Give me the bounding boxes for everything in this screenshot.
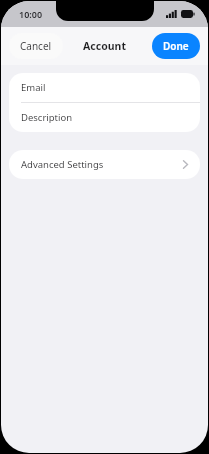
staticText: Description bbox=[21, 111, 73, 124]
button[interactable]: Cancel bbox=[9, 33, 63, 59]
button[interactable]: Email bbox=[9, 73, 200, 102]
other: Open Advanced Settings bbox=[183, 160, 188, 169]
staticText: Account bbox=[83, 39, 126, 53]
staticText: 10:00 bbox=[19, 8, 43, 20]
staticText: Cancel bbox=[20, 39, 52, 53]
button[interactable]: Done bbox=[152, 33, 200, 59]
staticText: Email bbox=[21, 81, 46, 94]
staticText: Advanced Settings bbox=[21, 158, 183, 171]
button[interactable]: Description bbox=[9, 103, 200, 132]
staticText: Done bbox=[163, 39, 189, 53]
button[interactable]: Advanced Settings bbox=[9, 150, 200, 179]
